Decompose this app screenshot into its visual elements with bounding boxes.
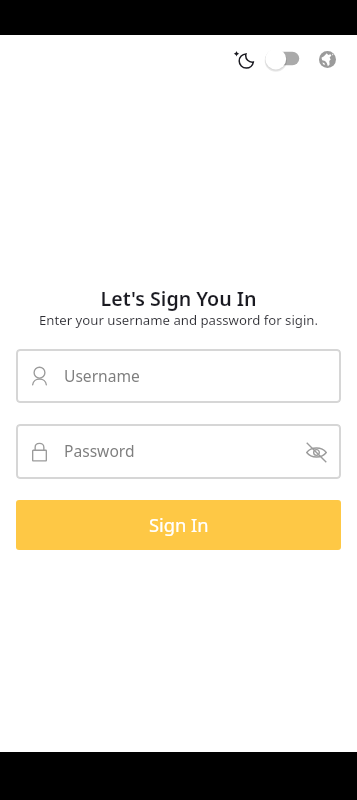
button[interactable]: Dark mode bbox=[229, 46, 259, 76]
staticText: Enter your username and password for sig… bbox=[0, 311, 357, 329]
button[interactable]: Sign In bbox=[16, 500, 341, 550]
button[interactable]: Change language bbox=[313, 45, 342, 74]
button[interactable]: Toggle dark mode bbox=[262, 46, 302, 72]
staticText: Let's Sign You In bbox=[0, 285, 357, 312]
button[interactable]: Show password bbox=[301, 437, 331, 467]
button[interactable]: Password bbox=[16, 424, 341, 479]
button[interactable]: Username bbox=[16, 349, 341, 403]
staticText: Sign In bbox=[149, 512, 209, 537]
staticText: Password bbox=[64, 440, 301, 461]
staticText: Username bbox=[64, 365, 140, 386]
